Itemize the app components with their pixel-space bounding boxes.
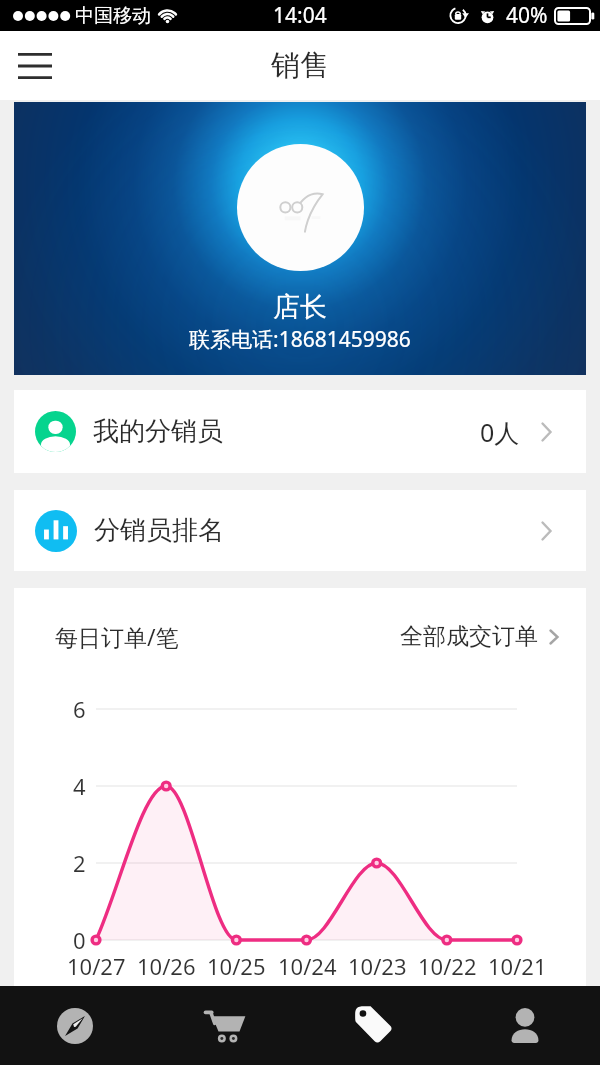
staticText: 4: [73, 771, 86, 801]
staticText: 分销员排名: [94, 514, 224, 547]
staticText: 联系电话:18681459986: [189, 325, 411, 354]
staticText: 我的分销员: [93, 415, 223, 448]
staticText: 10/26: [137, 951, 196, 981]
button[interactable]: Explore: [0, 986, 150, 1065]
staticText: 14:04: [273, 1, 327, 30]
button[interactable]: 我的分销员: [14, 390, 586, 473]
button[interactable]: 全部成交订单: [400, 622, 559, 651]
button[interactable]: 分销员排名: [14, 490, 586, 571]
staticText: 10/25: [207, 951, 266, 981]
button[interactable]: Cart: [150, 986, 300, 1065]
staticText: 10/22: [418, 951, 477, 981]
staticText: 10/21: [488, 951, 547, 981]
staticText: 店长: [273, 290, 327, 324]
button[interactable]: Tags: [300, 986, 450, 1065]
staticText: 10/24: [278, 951, 337, 981]
staticText: 40%: [506, 1, 548, 30]
staticText: 全部成交订单: [400, 622, 538, 651]
staticText: 10/23: [348, 951, 407, 981]
button[interactable]: Menu: [4, 35, 66, 97]
staticText: 10/27: [67, 951, 126, 981]
staticText: 销售: [271, 47, 329, 84]
staticText: 2: [73, 848, 86, 878]
staticText: 0人: [480, 415, 520, 449]
staticText: 每日订单/笔: [55, 621, 179, 652]
button[interactable]: Profile: [450, 986, 600, 1065]
staticText: 6: [73, 694, 86, 724]
staticText: 0: [73, 925, 86, 955]
staticText: 中国移动: [75, 4, 151, 28]
